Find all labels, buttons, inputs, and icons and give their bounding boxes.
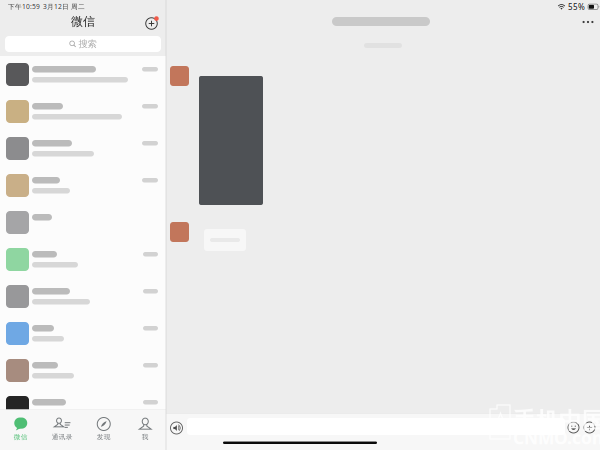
- button[interactable]: [0, 352, 166, 389]
- button[interactable]: [0, 241, 166, 278]
- staticText: 搜索: [78, 38, 96, 50]
- staticText: 发现: [97, 433, 111, 441]
- staticText: 我: [142, 433, 149, 441]
- button[interactable]: 通讯录: [41, 409, 83, 450]
- button[interactable]: More options: [583, 421, 596, 434]
- button[interactable]: [0, 315, 166, 352]
- staticText: 55%: [568, 1, 585, 12]
- button[interactable]: 发现: [83, 409, 124, 450]
- staticText: 通讯录: [52, 433, 73, 441]
- button[interactable]: [0, 204, 166, 241]
- button[interactable]: 搜索: [5, 36, 161, 52]
- button[interactable]: [0, 93, 166, 130]
- staticText: 手机中国: [513, 407, 600, 435]
- staticText: 微信: [14, 433, 28, 441]
- button[interactable]: [0, 130, 166, 167]
- button[interactable]: New chat: [145, 14, 161, 30]
- staticText: 下午10:59: [8, 2, 40, 11]
- button[interactable]: [0, 167, 166, 204]
- staticText: CNMO.com: [513, 426, 600, 449]
- button[interactable]: [0, 56, 166, 93]
- button[interactable]: More: [576, 13, 600, 31]
- staticText: 3月12日 周二: [43, 2, 85, 11]
- button[interactable]: Voice message: [169, 421, 183, 435]
- button[interactable]: Emoji: [567, 421, 580, 434]
- button[interactable]: [0, 389, 166, 426]
- button[interactable]: 我: [124, 409, 166, 450]
- staticText: 微信: [71, 14, 95, 29]
- button[interactable]: 微信: [0, 409, 41, 450]
- button[interactable]: [0, 278, 166, 315]
